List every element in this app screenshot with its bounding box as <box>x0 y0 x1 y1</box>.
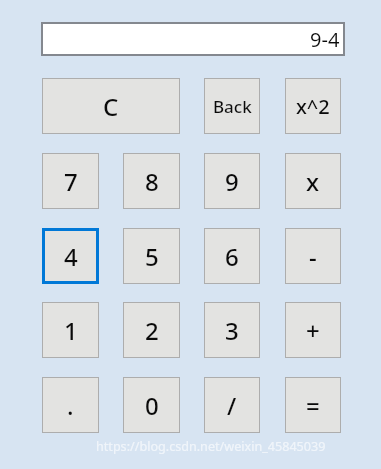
button[interactable]: / <box>204 377 260 433</box>
staticText: 8 <box>145 165 159 198</box>
staticText: = <box>306 389 320 422</box>
staticText: 9 <box>225 165 239 198</box>
staticText: + <box>306 314 320 347</box>
staticText: 3 <box>225 314 239 347</box>
button[interactable]: = <box>285 377 341 433</box>
button[interactable]: 0 <box>123 377 180 433</box>
button[interactable]: 1 <box>42 302 99 358</box>
staticText: 4 <box>64 240 78 273</box>
staticText: 2 <box>145 314 159 347</box>
button[interactable]: 6 <box>204 228 260 284</box>
button[interactable]: x^2 <box>285 78 341 134</box>
button[interactable]: + <box>285 302 341 358</box>
staticText: x <box>306 165 320 198</box>
button[interactable]: . <box>42 377 99 433</box>
button[interactable]: x <box>285 153 341 209</box>
staticText: 7 <box>64 165 78 198</box>
button[interactable]: - <box>285 228 341 284</box>
staticText: 1 <box>64 314 78 347</box>
staticText: . <box>67 389 74 422</box>
button[interactable]: 9-4 <box>41 22 345 56</box>
button[interactable]: 8 <box>123 153 180 209</box>
button[interactable]: 4 <box>42 228 99 284</box>
staticText: C <box>103 90 119 123</box>
staticText: - <box>309 240 317 273</box>
button[interactable]: 9 <box>204 153 260 209</box>
button[interactable]: 3 <box>204 302 260 358</box>
button[interactable]: Back <box>204 78 260 134</box>
button[interactable]: C <box>42 78 180 134</box>
staticText: 0 <box>145 389 159 422</box>
staticText: https://blog.csdn.net/weixin_45845039 <box>96 438 326 455</box>
staticText: 5 <box>145 240 159 273</box>
staticText: / <box>227 389 237 422</box>
button[interactable]: 7 <box>42 153 99 209</box>
staticText: Back <box>213 95 252 118</box>
staticText: 6 <box>225 240 239 273</box>
staticText: 9-4 <box>310 26 340 53</box>
staticText: x^2 <box>296 93 330 120</box>
button[interactable]: 2 <box>123 302 180 358</box>
button[interactable]: 5 <box>123 228 180 284</box>
